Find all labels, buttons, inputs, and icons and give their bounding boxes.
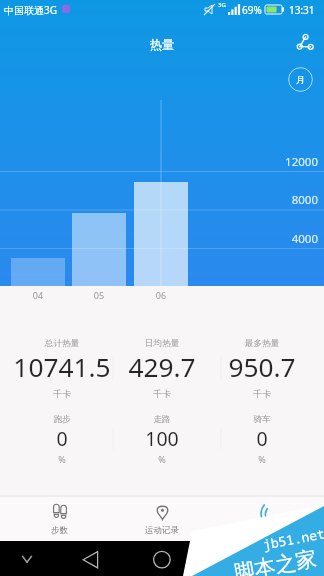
- staticText: 69%: [242, 3, 262, 17]
- button[interactable]: 月: [288, 67, 313, 92]
- button[interactable]: 骑车: [212, 414, 312, 477]
- staticText: 8000: [0, 192, 318, 208]
- staticText: 429.7: [112, 349, 212, 385]
- staticText: 最多热量: [212, 338, 312, 349]
- staticText: 05: [87, 289, 111, 301]
- button[interactable]: 运动记录: [128, 503, 196, 541]
- staticText: 步数: [51, 525, 68, 536]
- staticText: 热量: [256, 525, 273, 536]
- staticText: 12000: [0, 154, 318, 170]
- staticText: 千卡: [212, 388, 312, 399]
- staticText: jb51.net: [261, 524, 324, 553]
- staticText: %: [212, 453, 312, 465]
- staticText: 0: [212, 425, 312, 452]
- button[interactable]: 日均热量: [112, 338, 212, 412]
- button[interactable]: Home: [151, 548, 173, 570]
- staticText: %: [12, 453, 112, 465]
- button[interactable]: 跑步: [12, 414, 112, 477]
- staticText: 06: [149, 289, 173, 301]
- staticText: 月: [296, 74, 306, 86]
- staticText: 04: [26, 289, 50, 301]
- staticText: 跑步: [12, 414, 112, 425]
- button[interactable]: 步数: [25, 503, 93, 541]
- staticText: 13:31: [289, 3, 315, 17]
- staticText: 10741.5: [12, 349, 112, 385]
- staticText: 运动记录: [145, 525, 179, 536]
- button[interactable]: 最多热量: [212, 338, 312, 412]
- staticText: 3G: [218, 1, 226, 9]
- staticText: 0: [12, 425, 112, 452]
- staticText: 热量: [0, 37, 324, 53]
- button[interactable]: 热量: [230, 503, 298, 541]
- staticText: 走路: [112, 414, 212, 425]
- staticText: 950.7: [212, 349, 312, 385]
- staticText: 骑车: [212, 414, 312, 425]
- staticText: %: [112, 453, 212, 465]
- button[interactable]: Back: [79, 548, 101, 570]
- staticText: 千卡: [112, 388, 212, 399]
- button[interactable]: Share: [290, 29, 320, 59]
- staticText: 脚本之家: [231, 545, 319, 576]
- staticText: 中国联通3G: [4, 3, 57, 17]
- staticText: 千卡: [12, 388, 112, 399]
- staticText: 100: [112, 425, 212, 452]
- staticText: 总计热量: [12, 338, 112, 349]
- staticText: 日均热量: [112, 338, 212, 349]
- button[interactable]: Hide keyboard: [16, 548, 38, 570]
- staticText: 4000: [0, 231, 318, 247]
- button[interactable]: 总计热量: [12, 338, 112, 412]
- button[interactable]: 走路: [112, 414, 212, 477]
